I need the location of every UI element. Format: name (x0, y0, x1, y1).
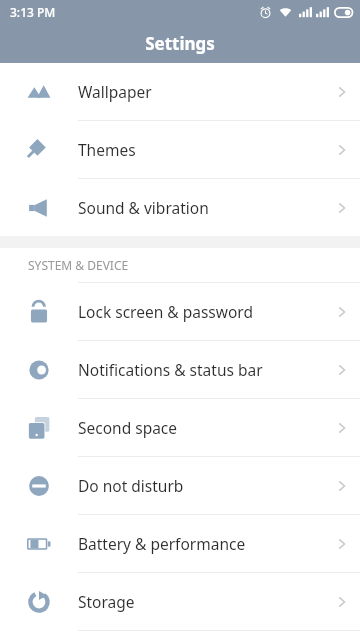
other: Open Notifications & status bar (324, 363, 360, 377)
staticText: Do not disturb (78, 475, 324, 496)
button[interactable]: Battery & performance (0, 515, 360, 572)
button[interactable]: Wallpaper (0, 63, 360, 120)
other: Open Second space (324, 421, 360, 435)
other: Open Storage (324, 595, 360, 609)
other: Open Wallpaper (324, 85, 360, 99)
staticText: Battery & performance (78, 533, 324, 554)
button[interactable]: Storage (0, 573, 360, 630)
button[interactable]: Do not disturb (0, 457, 360, 514)
button[interactable]: Sound & vibration (0, 179, 360, 236)
staticText: Second space (78, 417, 324, 438)
button[interactable]: Second space (0, 399, 360, 456)
staticText: Notifications & status bar (78, 359, 324, 380)
button[interactable]: Notifications & status bar (0, 341, 360, 398)
button[interactable]: Lock screen & password (0, 283, 360, 340)
other: Open Battery & performance (324, 537, 360, 551)
staticText: SYSTEM & DEVICE (28, 257, 129, 273)
staticText: Sound & vibration (78, 197, 324, 218)
staticText: Wallpaper (78, 81, 324, 102)
staticText: Lock screen & password (78, 301, 324, 322)
staticText: Themes (78, 139, 324, 160)
staticText: 3:13 PM (10, 4, 56, 20)
button[interactable]: Themes (0, 121, 360, 178)
staticText: Settings (145, 32, 215, 55)
other: Open Themes (324, 143, 360, 157)
other: Open Do not disturb (324, 479, 360, 493)
other: Open Lock screen & password (324, 305, 360, 319)
other: Open Sound & vibration (324, 201, 360, 215)
staticText: Storage (78, 591, 324, 612)
